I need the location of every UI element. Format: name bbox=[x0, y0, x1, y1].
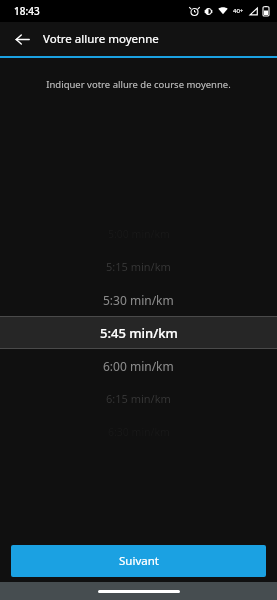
staticText: 40+ bbox=[233, 7, 244, 15]
staticText: Votre allure moyenne bbox=[43, 31, 159, 47]
button[interactable]: Retour bbox=[8, 25, 36, 53]
staticText: 5:45 min/km bbox=[100, 324, 178, 342]
staticText: 5:15 min/km bbox=[106, 259, 171, 274]
button[interactable]: Suivant bbox=[11, 545, 266, 577]
staticText: Suivant bbox=[119, 553, 159, 569]
button[interactable]: 6:15 min/km bbox=[0, 382, 277, 415]
staticText: 5:30 min/km bbox=[103, 292, 174, 308]
button[interactable]: 6:00 min/km bbox=[0, 349, 277, 382]
button[interactable]: 5:30 min/km bbox=[0, 283, 277, 316]
button[interactable]: 5:15 min/km bbox=[0, 250, 277, 283]
staticText: Indiquer votre allure de course moyenne. bbox=[0, 78, 277, 91]
staticText: 6:00 min/km bbox=[103, 358, 174, 374]
staticText: 18:43 bbox=[14, 4, 40, 18]
staticText: 6:15 min/km bbox=[106, 391, 171, 406]
button[interactable]: 5:45 min/km bbox=[0, 316, 277, 349]
